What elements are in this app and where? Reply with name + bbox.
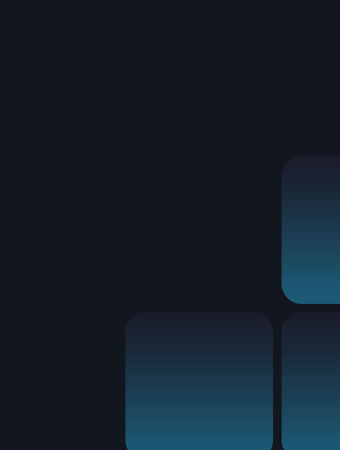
button[interactable]: Photo: [282, 312, 340, 450]
button[interactable]: Photo: [282, 155, 340, 304]
button[interactable]: Photo: [125, 312, 273, 450]
